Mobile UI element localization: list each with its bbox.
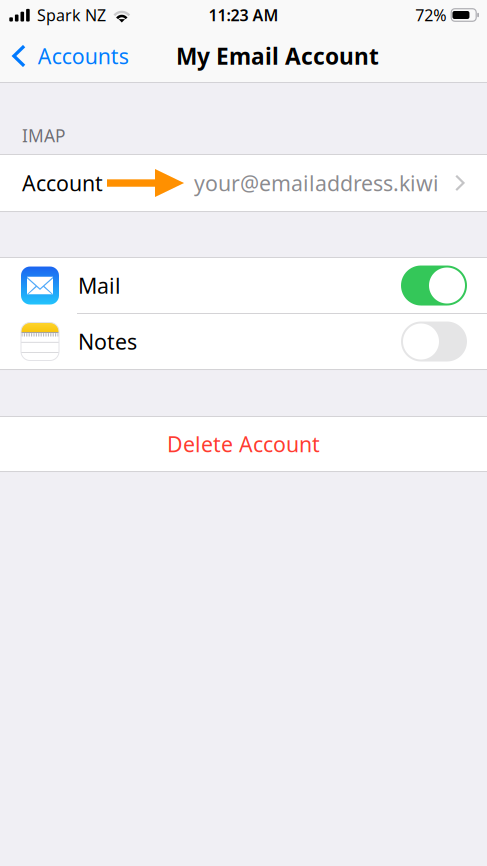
button[interactable]: Mail [0, 258, 487, 313]
staticText: your@emailaddress.kiwi [194, 169, 439, 197]
staticText: Mail [78, 271, 121, 300]
button[interactable]: Toggle off [401, 321, 467, 361]
button[interactable]: Toggle on [401, 265, 467, 305]
button[interactable]: Accounts [0, 30, 137, 82]
staticText: My Email Account [176, 41, 379, 71]
button[interactable]: Notes [0, 314, 487, 369]
staticText: Account [22, 169, 103, 197]
staticText: Accounts [38, 42, 129, 70]
button[interactable]: Delete Account [0, 417, 487, 471]
button[interactable]: Account [0, 155, 487, 211]
staticText: Delete Account [167, 430, 320, 458]
staticText: Spark NZ [37, 4, 106, 26]
staticText: Notes [78, 327, 137, 356]
staticText: 72% [415, 4, 446, 26]
staticText: IMAP [22, 124, 65, 147]
staticText: 11:23 AM [208, 4, 278, 26]
